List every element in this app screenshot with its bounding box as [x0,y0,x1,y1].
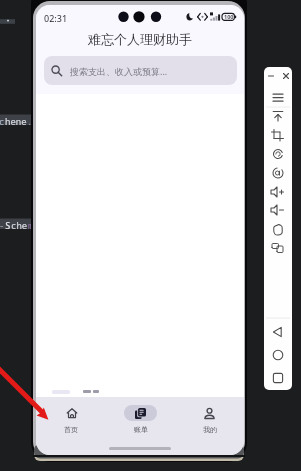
staticText: 账单 [134,425,148,434]
button[interactable]: 首页 [36,405,106,434]
staticText: e [34,219,40,231]
staticText: - [0,219,5,231]
staticText: 首页 [64,425,78,434]
staticText: o [33,115,39,127]
staticText: 我的 [203,425,217,434]
staticText: 02:31 [44,12,68,24]
button[interactable]: Emulator toolbar [264,67,292,390]
staticText: m [28,219,34,231]
staticText: hene [5,115,27,127]
staticText: che [11,219,28,231]
button[interactable]: 账单 [106,405,175,434]
staticText: . [27,115,33,127]
staticText: 难忘个人理财助手 [36,31,244,47]
button[interactable]: 我的 [175,405,244,434]
staticText: c [0,115,5,127]
staticText: 搜索支出、收入或预算... [70,65,168,77]
button[interactable]: 搜索支出、收入或预算... [44,56,237,85]
staticText: 100 [224,13,234,19]
staticText: S [5,219,11,231]
